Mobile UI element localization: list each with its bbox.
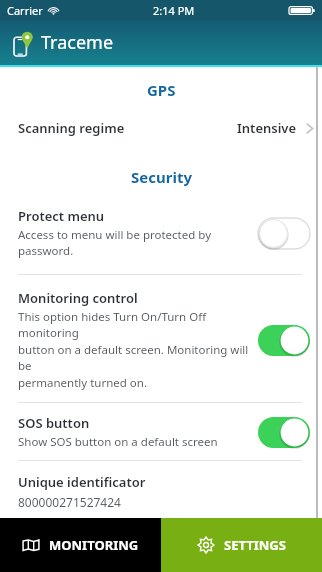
staticText: Monitoring control bbox=[18, 289, 138, 307]
button[interactable]: Scanning regime bbox=[0, 117, 322, 139]
staticText: MONITORING bbox=[49, 536, 139, 554]
button[interactable]: Toggle off bbox=[258, 218, 310, 249]
button[interactable]: Toggle on bbox=[258, 325, 310, 356]
button[interactable]: Protect menu bbox=[0, 207, 322, 260]
staticText: SETTINGS bbox=[224, 536, 286, 554]
staticText: Traceme bbox=[41, 30, 114, 55]
staticText: This option hides Turn On/Turn Off monit… bbox=[18, 309, 252, 341]
staticText: Access to menu will be protected by pass… bbox=[18, 227, 252, 259]
staticText: 800000271527424 bbox=[18, 494, 121, 510]
button[interactable]: Toggle on bbox=[258, 417, 310, 448]
staticText: Intensive bbox=[237, 119, 297, 137]
staticText: Show SOS button on a default screen bbox=[18, 434, 218, 450]
staticText: Protect menu bbox=[18, 207, 105, 225]
staticText: permanently turned on. bbox=[18, 375, 147, 391]
staticText: Security bbox=[131, 167, 192, 187]
button[interactable]: MONITORING bbox=[0, 518, 161, 572]
staticText: GPS bbox=[147, 80, 176, 100]
staticText: Scanning regime bbox=[18, 119, 125, 137]
staticText: Unique identificator bbox=[18, 473, 146, 491]
button[interactable]: Monitoring control bbox=[0, 289, 322, 392]
button[interactable]: SETTINGS bbox=[161, 518, 322, 572]
button[interactable]: SOS button bbox=[0, 414, 322, 451]
staticText: SOS button bbox=[18, 414, 90, 432]
staticText: button on a default screen. Monitoring w… bbox=[18, 342, 252, 374]
staticText: Carrier bbox=[7, 3, 43, 18]
staticText: 2:14 PM bbox=[153, 3, 195, 18]
